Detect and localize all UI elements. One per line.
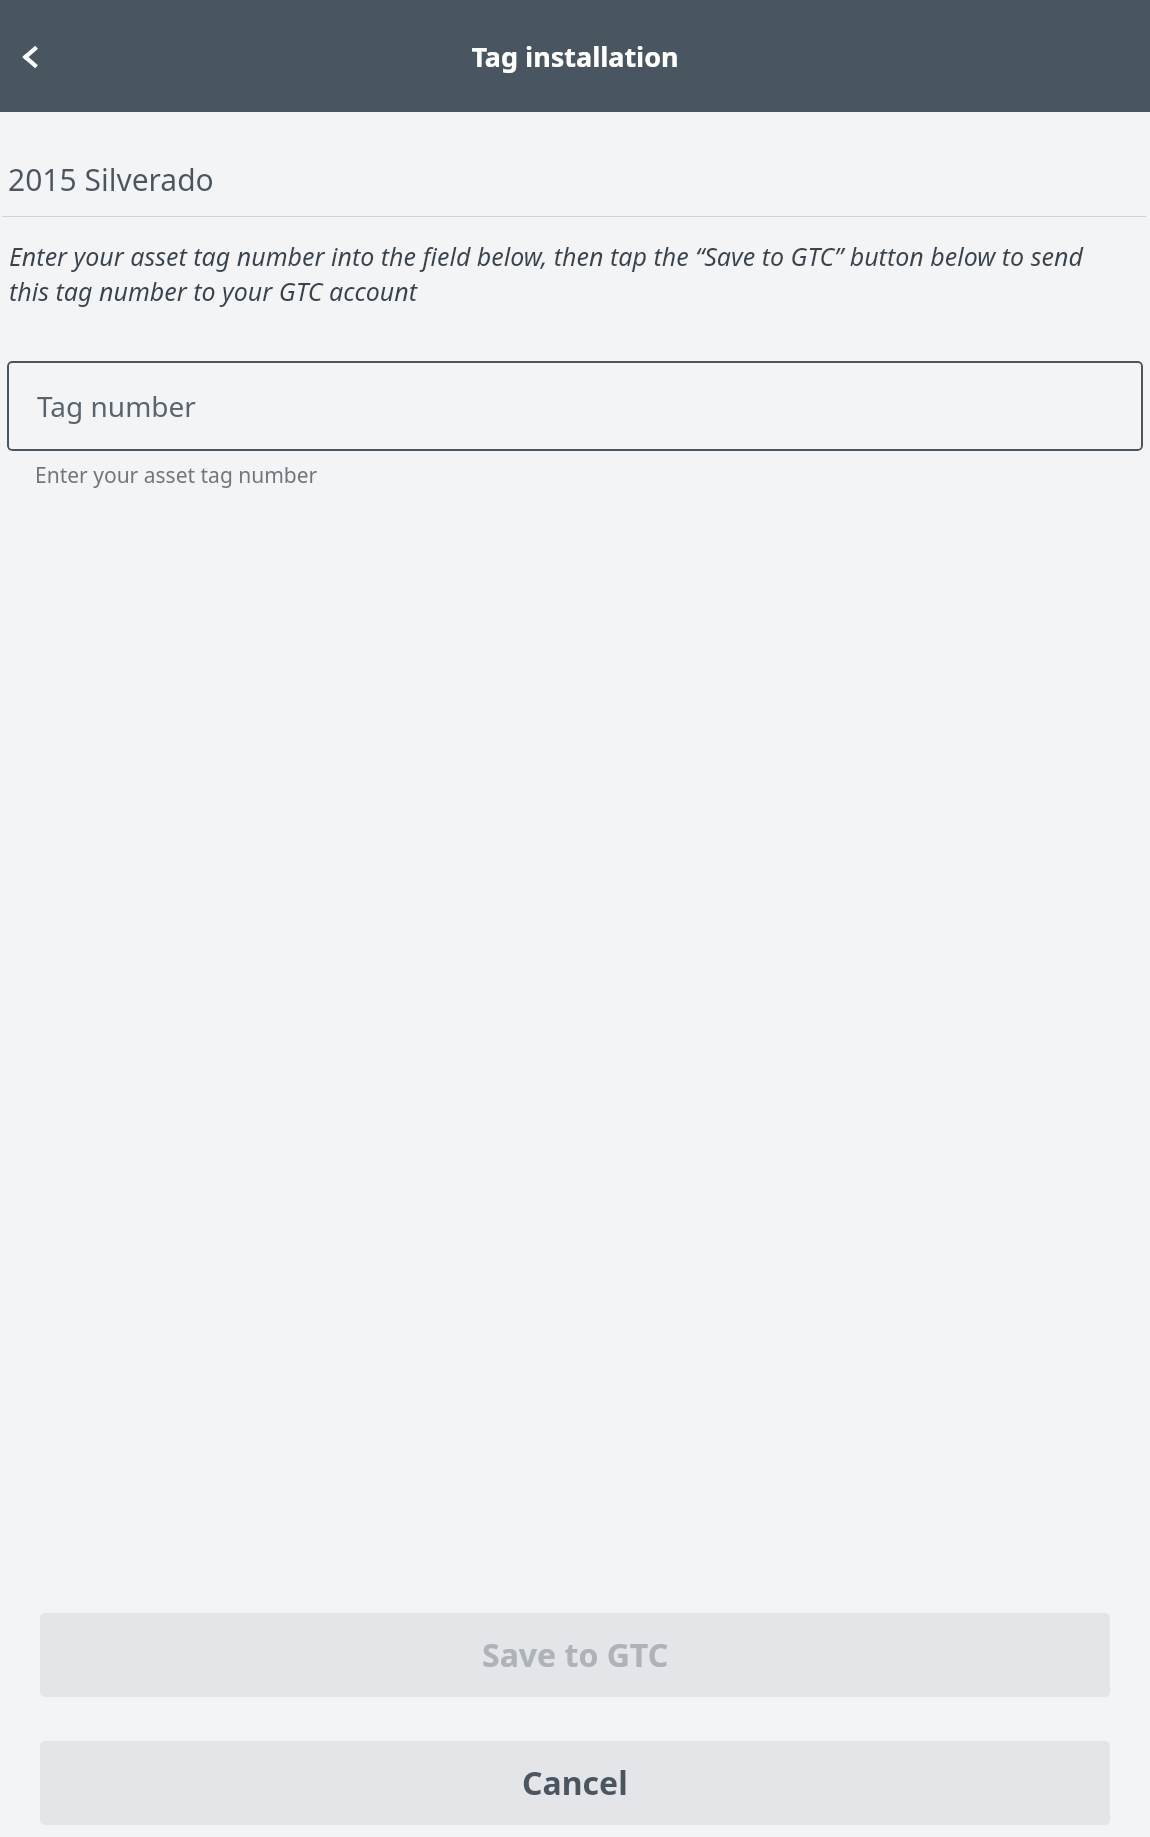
staticText: Enter your asset tag number into the fie… xyxy=(9,239,1120,309)
staticText: Enter your asset tag number xyxy=(35,461,318,490)
button[interactable]: Back xyxy=(0,25,64,89)
staticText: Save to GTC xyxy=(482,1633,669,1677)
staticText: Tag number xyxy=(37,387,196,425)
staticText: Cancel xyxy=(522,1761,628,1805)
button[interactable]: Tag number xyxy=(7,361,1143,451)
staticText: Tag installation xyxy=(471,38,679,75)
button[interactable]: Cancel xyxy=(40,1741,1110,1825)
button[interactable]: Save to GTC xyxy=(40,1613,1110,1697)
staticText: 2015 Silverado xyxy=(8,159,214,200)
